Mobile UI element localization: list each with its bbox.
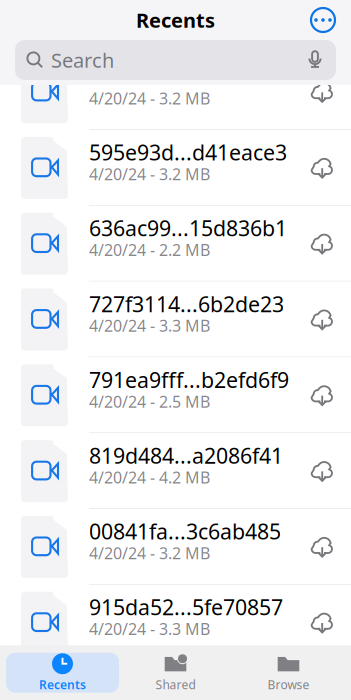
staticText: 4/20/24 - 3.3 MB bbox=[89, 618, 210, 639]
staticText: 636ac99...15d836b1 bbox=[89, 214, 287, 242]
button[interactable]: xxxxxxx...xxxxxxxx bbox=[0, 54, 351, 130]
button[interactable]: 00841fa...3c6ab485 bbox=[0, 509, 351, 585]
button[interactable]: Shared bbox=[119, 653, 232, 693]
button[interactable]: Browse bbox=[232, 653, 345, 693]
staticText: 819d484...a2086f41 bbox=[89, 441, 283, 470]
staticText: 4/20/24 - 3.2 MB bbox=[89, 88, 210, 109]
staticText: Shared bbox=[155, 677, 195, 693]
staticText: 00841fa...3c6ab485 bbox=[89, 517, 281, 545]
button[interactable]: Recents bbox=[6, 653, 119, 693]
button[interactable]: Search bbox=[15, 40, 336, 80]
staticText: Search bbox=[51, 47, 114, 73]
button[interactable]: 636ac99...15d836b1 bbox=[0, 206, 351, 282]
staticText: 4/20/24 - 3.3 MB bbox=[89, 315, 210, 336]
staticText: 915da52...5fe70857 bbox=[89, 593, 283, 621]
staticText: 595e93d...d41eace3 bbox=[89, 138, 287, 166]
staticText: 4/20/24 - 3.2 MB bbox=[89, 163, 210, 185]
staticText: 4/20/24 - 2.5 MB bbox=[89, 391, 210, 412]
button[interactable]: 727f3114...6b2de23 bbox=[0, 282, 351, 357]
staticText: xxxxxxx...xxxxxxxx bbox=[89, 62, 272, 91]
button[interactable]: 791ea9fff...b2efd6f9 bbox=[0, 357, 351, 433]
button[interactable]: 595e93d...d41eace3 bbox=[0, 130, 351, 206]
staticText: 727f3114...6b2de23 bbox=[89, 290, 284, 318]
staticText: 4/20/24 - 3.2 MB bbox=[89, 542, 210, 564]
staticText: 791ea9fff...b2efd6f9 bbox=[89, 365, 289, 394]
staticText: 4/20/24 - 2.2 MB bbox=[89, 239, 210, 260]
staticText: Recents bbox=[136, 7, 215, 33]
staticText: Browse bbox=[267, 677, 309, 693]
button[interactable]: 819d484...a2086f41 bbox=[0, 433, 351, 509]
button[interactable]: More bbox=[308, 5, 338, 35]
button[interactable]: 915da52...5fe70857 bbox=[0, 585, 351, 661]
staticText: Recents bbox=[39, 677, 86, 693]
staticText: 4/20/24 - 4.2 MB bbox=[89, 467, 210, 488]
